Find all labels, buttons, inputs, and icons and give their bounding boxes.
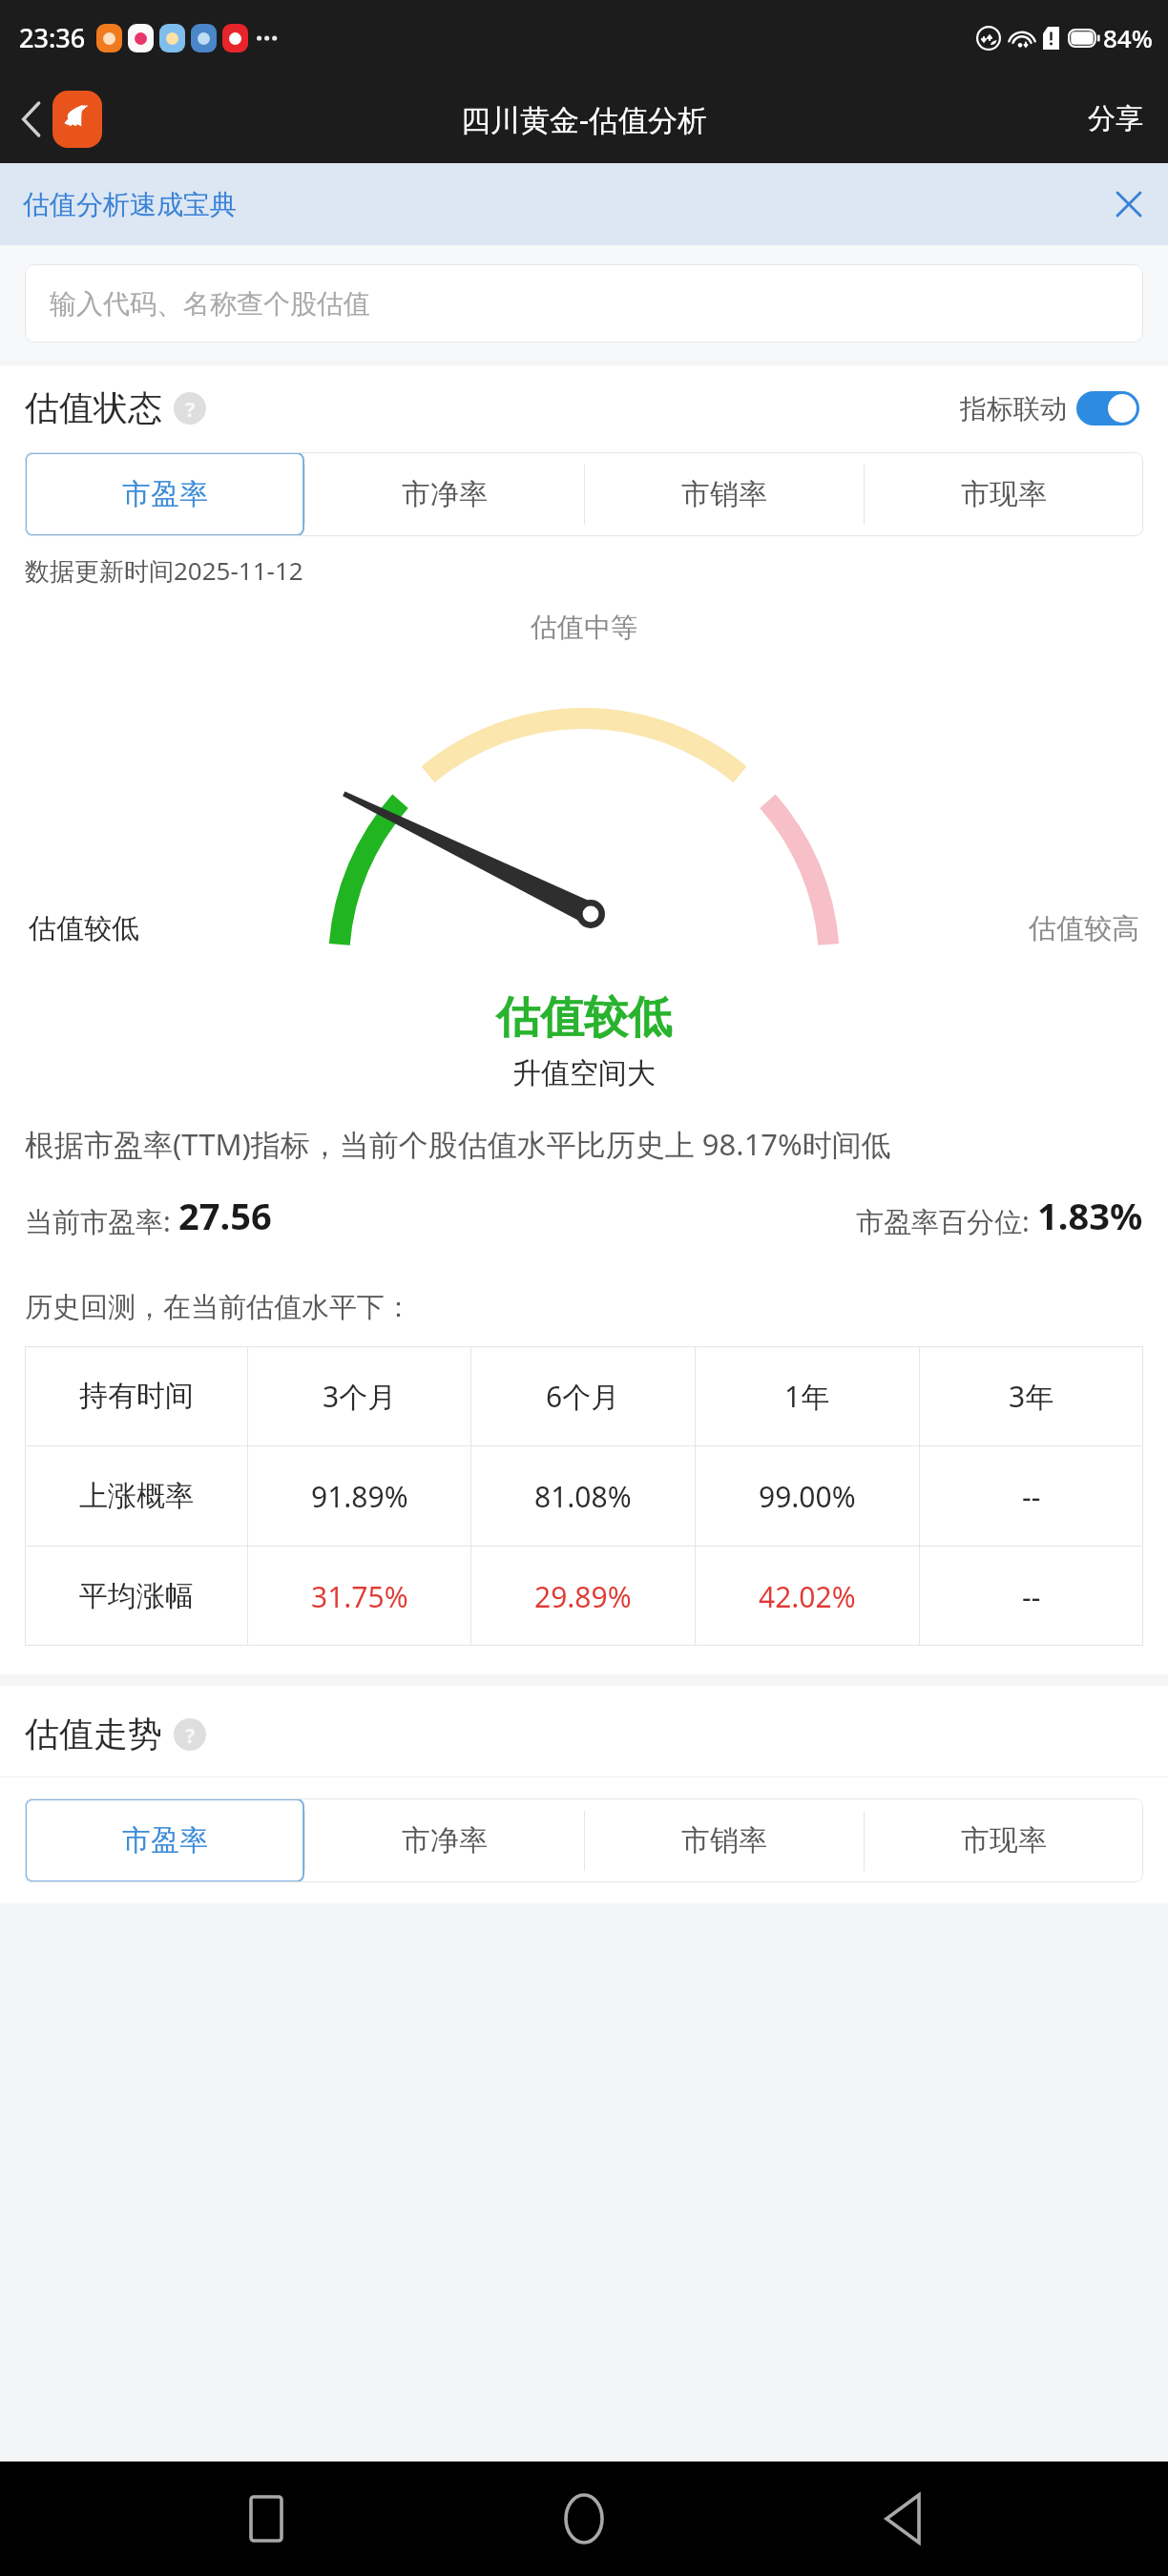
staticText: 市现率 bbox=[961, 1822, 1047, 1859]
button[interactable]: 输入代码、名称查个股估值 bbox=[25, 264, 1143, 343]
staticText: ? bbox=[185, 394, 196, 423]
staticText: 6个月 bbox=[546, 1377, 620, 1416]
button[interactable]: Help bbox=[174, 392, 206, 425]
staticText: 指标联动 bbox=[960, 392, 1067, 426]
staticText: 根据市盈率(TTM)指标，当前个股估值水平比历史上 98.17%时间低 bbox=[25, 1124, 1143, 1164]
staticText: 当前市盈率: bbox=[25, 1202, 178, 1240]
staticText: 29.89% bbox=[534, 1577, 632, 1616]
button[interactable]: 分享 bbox=[1063, 86, 1168, 152]
staticText: 估值状态 bbox=[25, 386, 162, 429]
button[interactable]: App logo bbox=[52, 91, 102, 148]
staticText: 历史回测，在当前估值水平下： bbox=[25, 1290, 412, 1325]
staticText: 平均涨幅 bbox=[79, 1578, 194, 1614]
staticText: 估值走势 bbox=[25, 1713, 162, 1755]
button[interactable]: 市盈率 bbox=[25, 452, 304, 536]
button[interactable]: 估值分析速成宝典 bbox=[0, 163, 1168, 245]
staticText: 市盈率 bbox=[122, 476, 208, 512]
staticText: 27.56 bbox=[178, 1191, 272, 1240]
button[interactable]: Home bbox=[532, 2466, 636, 2571]
staticText: 估值中等 bbox=[531, 611, 637, 644]
staticText: 市净率 bbox=[402, 476, 488, 512]
button[interactable]: 市净率 bbox=[304, 452, 584, 536]
staticText: 升值空间大 bbox=[0, 1055, 1168, 1091]
button[interactable]: 市现率 bbox=[864, 1798, 1143, 1882]
button[interactable]: Recents bbox=[214, 2466, 319, 2571]
staticText: 市现率 bbox=[961, 476, 1047, 512]
staticText: ? bbox=[185, 1720, 196, 1749]
staticText: 市销率 bbox=[681, 476, 767, 512]
button[interactable]: Back bbox=[850, 2466, 955, 2571]
staticText: 81.08% bbox=[534, 1477, 632, 1516]
staticText: 估值较低 bbox=[0, 990, 1168, 1046]
button[interactable]: 指标联动 bbox=[956, 387, 1143, 429]
staticText: 3年 bbox=[1009, 1377, 1054, 1416]
staticText: 市销率 bbox=[681, 1822, 767, 1859]
staticText: 23:36 bbox=[19, 20, 86, 55]
staticText: 1.83% bbox=[1037, 1191, 1143, 1240]
button[interactable]: 市销率 bbox=[584, 452, 864, 536]
button[interactable]: 市销率 bbox=[584, 1798, 864, 1882]
staticText: 91.89% bbox=[311, 1477, 408, 1516]
staticText: 42.02% bbox=[759, 1577, 856, 1616]
staticText: 3个月 bbox=[323, 1377, 397, 1416]
button[interactable]: Help bbox=[174, 1718, 206, 1751]
staticText: 99.00% bbox=[759, 1477, 856, 1516]
button[interactable]: 市盈率 bbox=[25, 1798, 304, 1882]
staticText: 四川黄金-估值分析 bbox=[461, 99, 707, 139]
staticText: 输入代码、名称查个股估值 bbox=[50, 287, 370, 321]
staticText: -- bbox=[1022, 1477, 1041, 1516]
staticText: 1年 bbox=[784, 1377, 830, 1416]
staticText: -- bbox=[1022, 1577, 1041, 1616]
staticText: 持有时间 bbox=[79, 1378, 194, 1414]
button[interactable]: 市现率 bbox=[864, 452, 1143, 536]
staticText: 31.75% bbox=[311, 1577, 408, 1616]
staticText: 市净率 bbox=[402, 1822, 488, 1859]
staticText: 市盈率 bbox=[122, 1822, 208, 1859]
staticText: 估值较低 bbox=[29, 911, 139, 946]
staticText: 分享 bbox=[1088, 101, 1143, 136]
staticText: 84% bbox=[1103, 21, 1153, 54]
staticText: 数据更新时间2025-11-12 bbox=[25, 553, 303, 588]
staticText: 市盈率百分位: bbox=[856, 1202, 1037, 1240]
staticText: 上涨概率 bbox=[79, 1478, 194, 1514]
button[interactable]: 市净率 bbox=[304, 1798, 584, 1882]
button[interactable]: Close banner bbox=[1090, 175, 1168, 234]
staticText: 估值较高 bbox=[1029, 911, 1139, 946]
button[interactable]: Back bbox=[13, 95, 50, 143]
staticText: 估值分析速成宝典 bbox=[23, 188, 237, 221]
